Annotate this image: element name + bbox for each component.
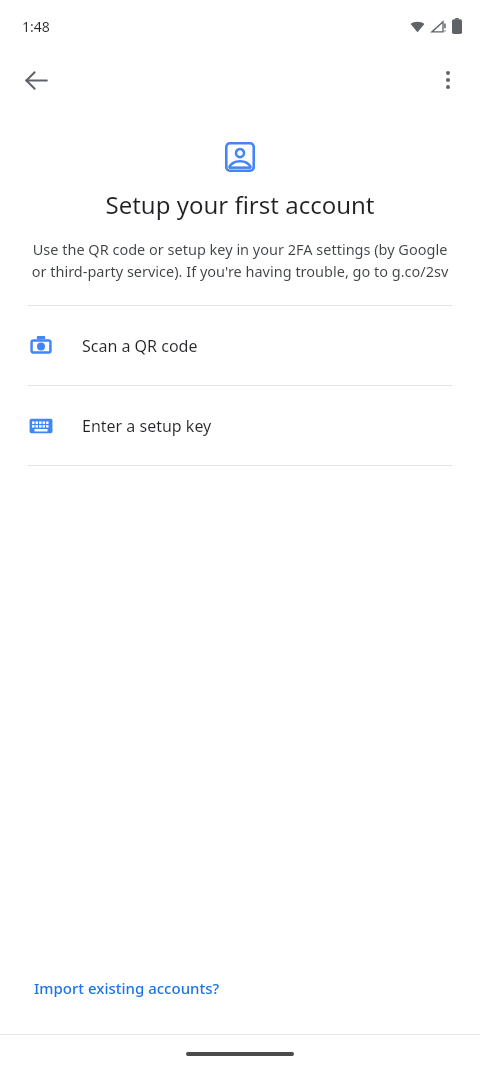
staticText: Setup your first account — [0, 188, 480, 221]
staticText: Use the QR code or setup key in your 2FA… — [28, 239, 452, 281]
staticText: Scan a QR code — [82, 335, 198, 357]
staticText: 1:48 — [22, 17, 50, 36]
button[interactable]: Back — [12, 56, 60, 104]
staticText: Import existing accounts? — [34, 978, 220, 998]
staticText: Enter a setup key — [82, 415, 212, 437]
button[interactable]: Scan a QR code — [0, 306, 480, 385]
button[interactable]: Import existing accounts? — [0, 964, 480, 1012]
button[interactable]: Enter a setup key — [0, 386, 480, 465]
button[interactable]: More options — [424, 56, 472, 104]
